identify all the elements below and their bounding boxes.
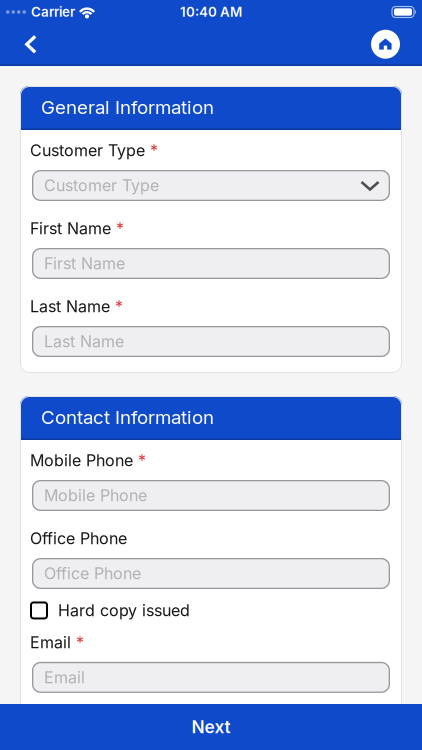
button[interactable]: Customer Type xyxy=(30,170,392,201)
staticText: Last Name xyxy=(30,297,110,316)
button[interactable]: Next xyxy=(0,704,422,750)
staticText: * xyxy=(116,219,124,238)
staticText: 10:40 AM xyxy=(180,4,242,20)
staticText: First Name xyxy=(30,219,111,238)
staticText: Email xyxy=(30,633,71,652)
staticText: * xyxy=(115,297,123,316)
staticText: Office Phone xyxy=(30,529,127,548)
button[interactable]: Home xyxy=(371,30,400,59)
staticText: Next xyxy=(191,717,230,737)
staticText: Contact Information xyxy=(41,406,214,428)
button[interactable]: Email xyxy=(30,662,392,693)
staticText: Carrier xyxy=(31,4,75,20)
staticText: Customer Type xyxy=(30,141,145,160)
staticText: Mobile Phone xyxy=(30,451,133,470)
staticText: General Information xyxy=(41,96,214,118)
button[interactable]: Last Name xyxy=(30,326,392,357)
staticText: Last Name xyxy=(44,332,124,351)
staticText: Customer Type xyxy=(44,176,159,195)
staticText: Hard copy issued xyxy=(58,601,190,620)
staticText: * xyxy=(138,451,146,470)
staticText: First Name xyxy=(44,254,125,273)
staticText: * xyxy=(76,633,84,652)
button[interactable]: Hard copy issued xyxy=(30,601,392,620)
button[interactable]: First Name xyxy=(30,248,392,279)
staticText: Mobile Phone xyxy=(44,486,147,505)
button[interactable]: Office Phone xyxy=(30,558,392,589)
button[interactable]: Mobile Phone xyxy=(30,480,392,511)
staticText: Office Phone xyxy=(44,564,141,583)
button[interactable]: Back xyxy=(0,35,37,54)
staticText: * xyxy=(150,141,158,160)
staticText: Email xyxy=(44,668,85,687)
